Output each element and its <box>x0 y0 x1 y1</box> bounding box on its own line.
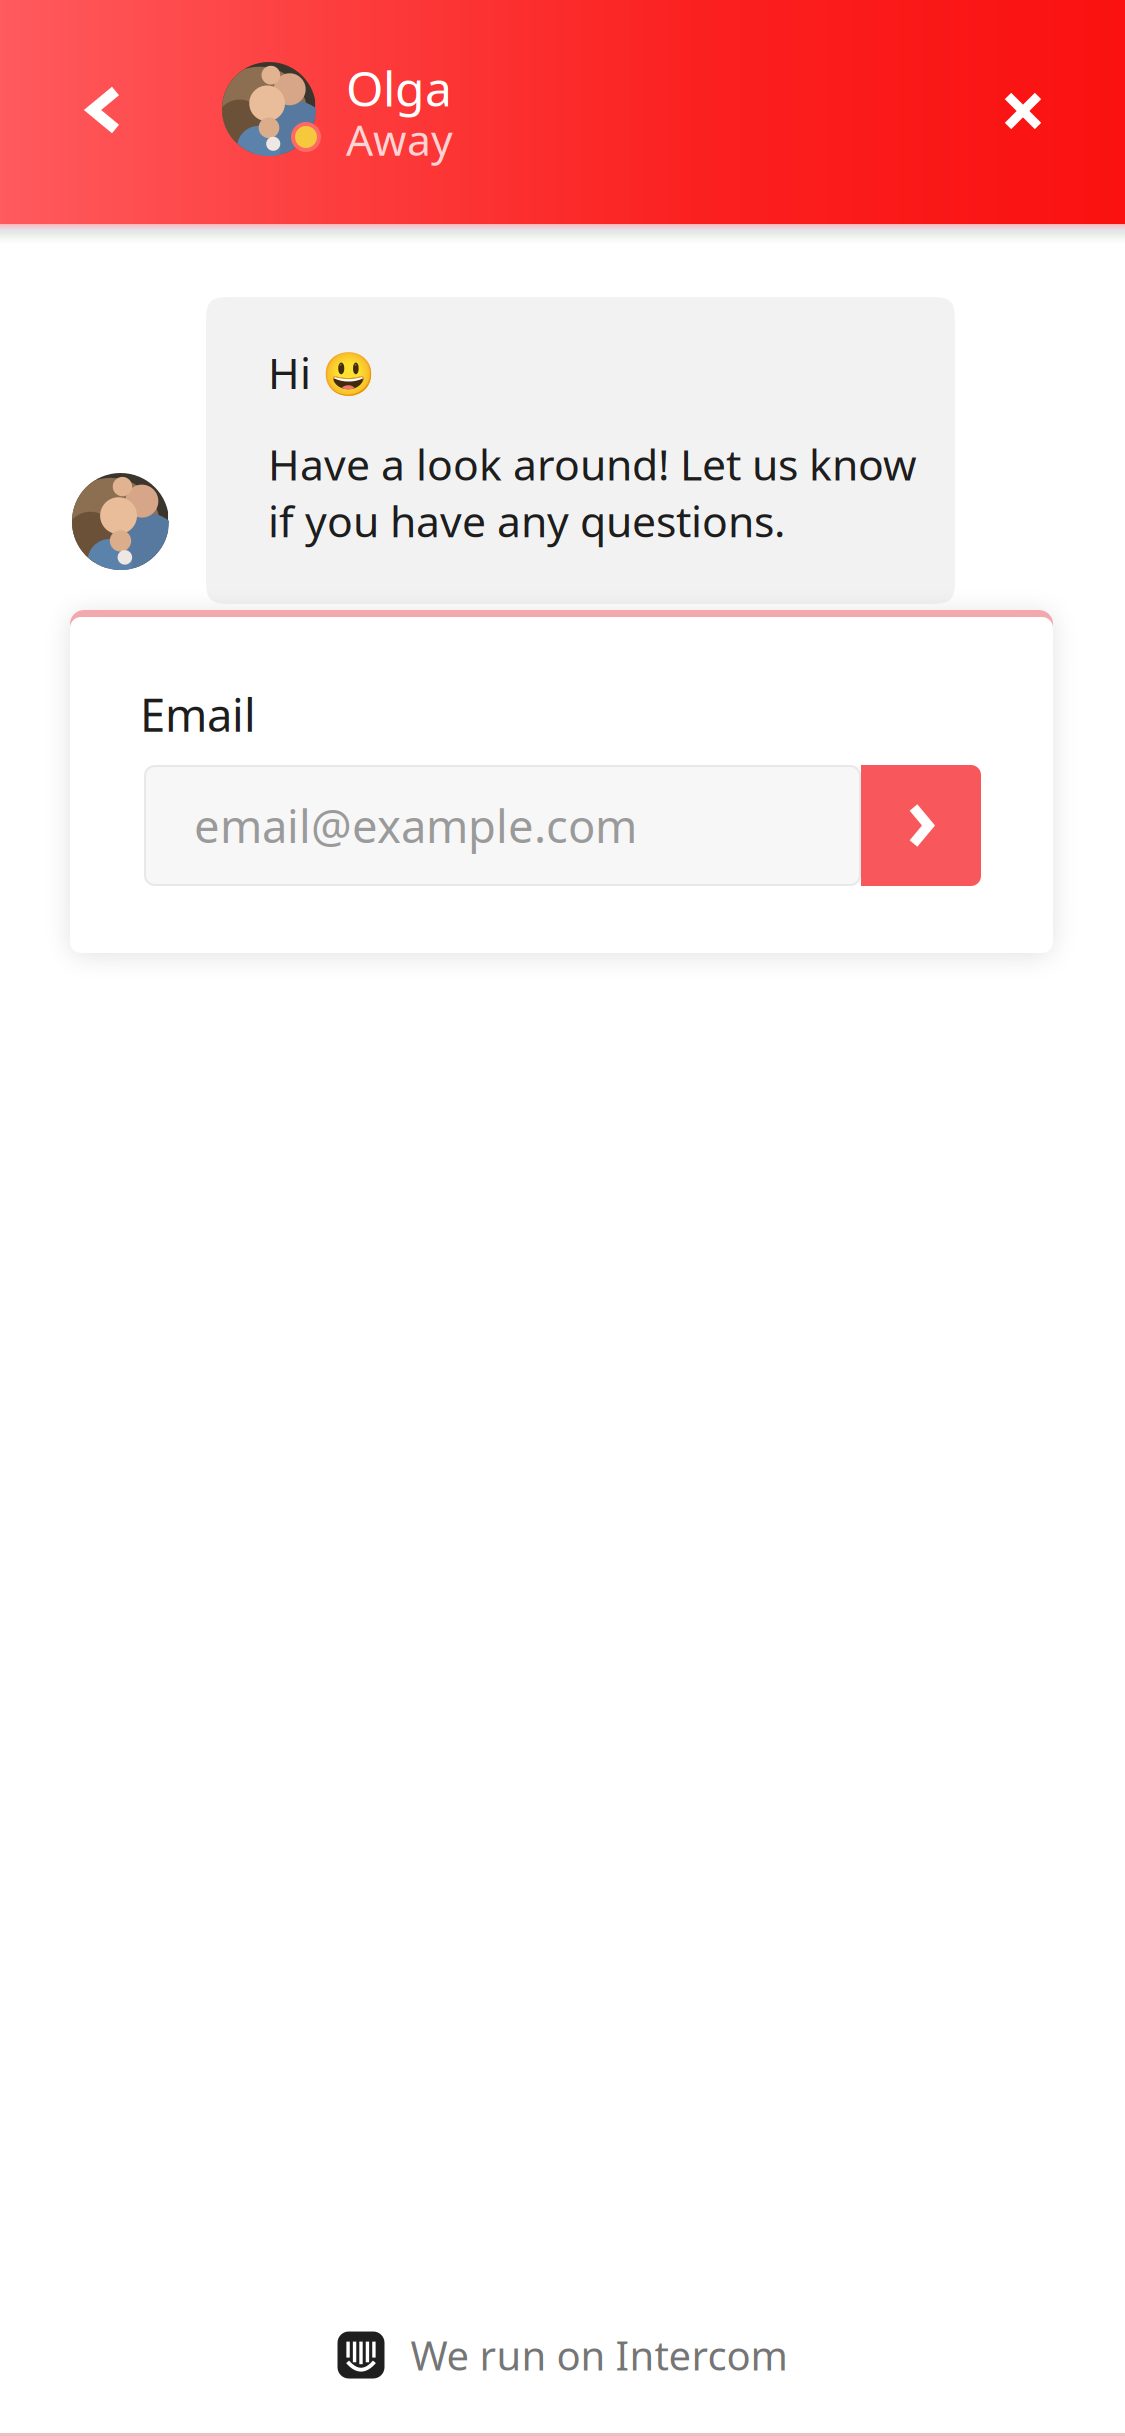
button[interactable]: Submit email <box>861 765 981 886</box>
staticText: Olga <box>346 56 452 120</box>
button[interactable]: Back <box>44 45 164 175</box>
staticText: We run on Intercom <box>410 2328 787 2381</box>
staticText: Away <box>346 111 453 167</box>
staticText: Email <box>140 684 256 744</box>
staticText: email@example.com <box>194 795 637 856</box>
button[interactable]: Olga <box>222 53 862 183</box>
button[interactable]: We run on Intercom <box>0 2305 1125 2405</box>
staticText: Hi 😃 <box>268 344 375 401</box>
button[interactable]: Close <box>958 46 1088 176</box>
staticText: Have a look around! Let us know if you h… <box>268 436 917 549</box>
